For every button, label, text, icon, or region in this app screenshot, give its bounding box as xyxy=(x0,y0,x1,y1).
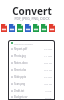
button[interactable]: CSV xyxy=(41,24,47,32)
button[interactable]: PPT xyxy=(49,24,55,32)
staticText: 720 KB xyxy=(44,82,52,85)
staticText: 1.1 MB xyxy=(44,54,52,57)
button[interactable]: Report.pdf xyxy=(11,45,52,52)
button[interactable]: Photo.jpg xyxy=(11,52,52,59)
staticText: 64 KB xyxy=(45,96,52,99)
staticText: Budget.csv xyxy=(14,95,28,99)
button[interactable]: DOC xyxy=(25,24,31,32)
staticText: Scan.png xyxy=(14,82,26,86)
staticText: 840 KB xyxy=(44,61,52,64)
staticText: Photo.jpg xyxy=(14,54,26,58)
staticText: Draft.txt xyxy=(14,89,25,93)
button[interactable]: Notes.docx xyxy=(11,59,52,66)
staticText: Notes.docx xyxy=(14,61,28,65)
button[interactable]: Scan.png xyxy=(11,80,52,87)
staticText: Convert xyxy=(0,4,64,18)
button[interactable]: Slide.pptx xyxy=(11,73,52,80)
button[interactable]: JPG xyxy=(9,24,15,32)
staticText: Sheet.xlsx xyxy=(14,68,27,72)
button[interactable]: Budget.csv xyxy=(11,94,52,100)
staticText: 5.2 MB xyxy=(44,75,52,78)
staticText: 2.4 MB xyxy=(44,47,52,50)
button[interactable]: PNG xyxy=(17,24,23,32)
staticText: PDF, JPEG, PNG, DOCX xyxy=(0,16,64,21)
staticText: Ready to convert xyxy=(14,42,33,45)
staticText: Slide.pptx xyxy=(14,75,27,79)
staticText: Report.pdf xyxy=(14,47,28,51)
button[interactable]: PDF xyxy=(1,24,7,32)
button[interactable]: Draft.txt xyxy=(11,87,52,94)
button[interactable]: Sheet.xlsx xyxy=(11,66,52,73)
staticText: 310 KB xyxy=(44,68,52,71)
button[interactable]: XLS xyxy=(33,24,39,32)
staticText: 12 KB xyxy=(45,89,52,92)
